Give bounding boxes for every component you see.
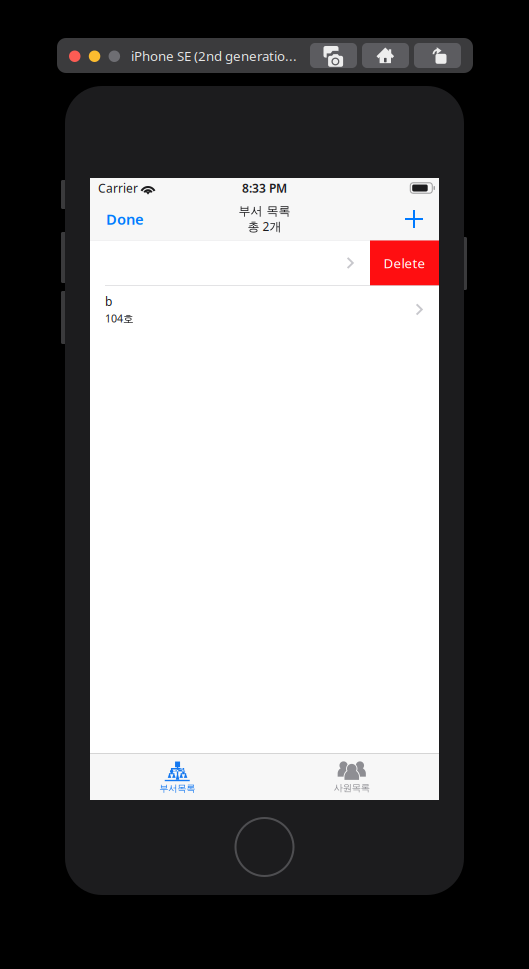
staticText: 104호	[105, 311, 134, 326]
button[interactable]: Rotate	[414, 43, 461, 68]
staticText: 사원목록	[334, 782, 370, 794]
button[interactable]: b	[90, 286, 439, 333]
button[interactable]: Done	[96, 198, 154, 240]
button[interactable]: Delete	[370, 240, 439, 285]
staticText: 부서 목록	[238, 204, 290, 218]
button[interactable]: Add	[393, 198, 435, 240]
staticText: 부서목록	[159, 783, 195, 794]
button[interactable]: 부서목록	[90, 754, 264, 800]
staticText: Done	[106, 209, 144, 229]
staticText: b	[105, 293, 112, 309]
staticText: Carrier	[98, 180, 138, 196]
staticText: 총 2개	[247, 218, 281, 234]
button[interactable]: Home	[362, 43, 409, 68]
button[interactable]: 사원목록	[264, 754, 439, 800]
staticText: Delete	[383, 254, 425, 272]
staticText: iPhone SE (2nd generatio...	[131, 47, 297, 65]
button[interactable]: Screenshot	[310, 43, 357, 68]
staticText: 8:33 PM	[242, 180, 287, 196]
